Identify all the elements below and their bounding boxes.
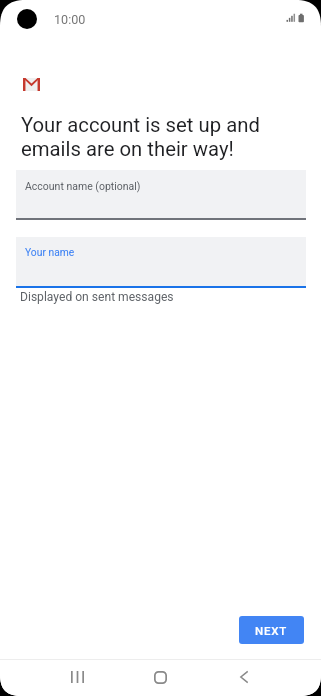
button[interactable]: Account name (optional) [16,170,306,220]
staticText: Your account is set up and emails are on… [21,113,260,161]
button[interactable]: Back [224,659,264,695]
staticText: 10:00 [54,12,86,27]
staticText: Your name [25,246,75,258]
other: Signal and battery status [284,12,306,24]
button[interactable]: Home [140,659,180,695]
button[interactable]: Recent apps [57,659,97,695]
other: Gmail [23,78,40,91]
button[interactable]: Your name [16,237,306,288]
button[interactable]: NEXT [239,616,304,644]
staticText: Account name (optional) [25,180,141,192]
staticText: Displayed on sent messages [20,290,174,304]
staticText: NEXT [255,624,288,637]
